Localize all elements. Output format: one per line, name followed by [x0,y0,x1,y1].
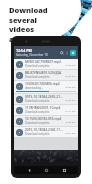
button[interactable]: Advertisement [14,150,78,161]
staticText: 1178HM602001-1Cmp4 [25,106,61,110]
button[interactable]: 10U06OC7400406.mp4 [14,81,78,93]
staticText: 12:30 PM [65,85,76,88]
staticText: 12:17 PM [65,109,76,112]
staticText: Download complete [25,99,50,103]
button[interactable]: Home [43,167,49,173]
staticText: 12:22 PM [65,98,76,101]
staticText: 0915-10-18044-2655-21092 [25,95,64,99]
button[interactable]: Search [60,51,64,55]
button[interactable]: Recent apps [61,167,67,173]
staticText: downloading… [25,86,43,90]
staticText: Download complete [25,132,50,136]
staticText: 12:01 PM [65,131,76,134]
staticText: Saturday, December 10 [16,53,48,57]
staticText: 12:08 PM [65,120,76,123]
button[interactable]: 10 1500-06P43-055.mp4 [14,116,78,126]
staticText: Download [9,5,48,15]
staticText: MVI0143C7908907.mp4 [25,60,61,64]
button[interactable]: 0915-10-18044-2655-21092 [14,94,78,104]
button[interactable]: MVI0143C7908907.mp4 [14,59,78,69]
staticText: 10 1500-06P43-055.mp4 [25,117,62,121]
staticText: 12:54 PM [16,48,32,53]
staticText: 12:34 PM [65,74,76,77]
staticText: Download complete [25,64,50,68]
staticText: at once [9,34,38,44]
button[interactable]: BB-87VNS4891-5254JQA [14,70,78,80]
button[interactable]: More options [65,51,69,55]
staticText: Download complete [25,110,50,114]
button[interactable]: 2015-10-18044-2343-1196L [14,127,78,137]
staticText: 12:38 PM [65,63,76,66]
button[interactable]: 1178HM602001-1Cmp4 [14,105,78,115]
staticText: 2015-10-18044-2343-1196L [25,128,64,132]
button[interactable]: Add download [70,50,76,56]
staticText: Download complete [25,75,50,79]
staticText: several videos [9,15,55,34]
staticText: BB-87VNS4891-5254JQA [25,71,62,75]
button[interactable]: Back [26,167,32,173]
staticText: 10U06OC7400406.mp4 [25,82,60,86]
staticText: Download complete [25,121,50,125]
